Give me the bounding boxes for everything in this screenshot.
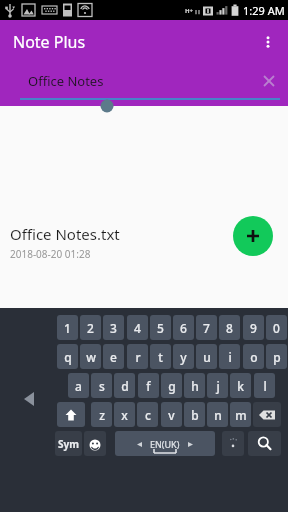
button[interactable]: Sym	[55, 431, 82, 456]
button[interactable]: Period	[222, 431, 244, 456]
button[interactable]: p	[266, 344, 287, 369]
button[interactable]: 7	[196, 315, 217, 340]
button[interactable]: n	[207, 402, 228, 427]
staticText: Note Plus	[13, 31, 86, 53]
staticText: o	[250, 349, 258, 365]
button[interactable]: 2	[80, 315, 101, 340]
staticText: r	[135, 349, 141, 365]
staticText: Sym	[58, 437, 79, 451]
staticText: y	[180, 349, 187, 365]
staticText: k	[237, 378, 244, 394]
staticText: g	[168, 378, 176, 394]
staticText: a	[75, 378, 82, 394]
staticText: f	[146, 378, 151, 394]
staticText: s	[99, 378, 105, 394]
button[interactable]: Clear search	[254, 66, 284, 96]
staticText: 7	[203, 320, 210, 336]
button[interactable]: Office Notes.txt	[0, 214, 288, 270]
staticText: 1:29 AM	[243, 3, 285, 18]
button[interactable]: Shift	[57, 402, 85, 427]
button[interactable]: Space	[115, 431, 215, 456]
staticText: Office Notes.txt	[10, 224, 120, 244]
staticText: l	[263, 378, 267, 394]
staticText: 6	[180, 320, 187, 336]
staticText: b	[191, 407, 199, 423]
staticText: x	[121, 407, 128, 423]
button[interactable]: m	[230, 402, 251, 427]
button[interactable]: i	[219, 344, 240, 369]
staticText: e	[110, 349, 117, 365]
button[interactable]: c	[137, 402, 158, 427]
button[interactable]: 1	[57, 315, 78, 340]
staticText: 1	[64, 320, 71, 336]
staticText: t	[158, 349, 163, 365]
button[interactable]: q	[57, 344, 78, 369]
button[interactable]: o	[243, 344, 264, 369]
button[interactable]: j	[207, 373, 228, 398]
button[interactable]: g	[161, 373, 182, 398]
staticText: EN(UK)	[150, 438, 180, 450]
staticText: 3	[110, 320, 117, 336]
staticText: v	[168, 407, 175, 423]
button[interactable]: s	[91, 373, 112, 398]
button[interactable]: r	[127, 344, 148, 369]
staticText: h	[191, 378, 199, 394]
staticText: 0	[273, 320, 280, 336]
button[interactable]: 8	[219, 315, 240, 340]
button[interactable]: 9	[243, 315, 264, 340]
staticText: i	[228, 349, 232, 365]
button[interactable]: Search	[248, 431, 281, 456]
button[interactable]: f	[138, 373, 159, 398]
staticText: 2	[87, 320, 94, 336]
button[interactable]: y	[173, 344, 194, 369]
button[interactable]: w	[80, 344, 101, 369]
staticText: c	[145, 407, 151, 423]
staticText: m	[235, 407, 247, 423]
button[interactable]: k	[230, 373, 251, 398]
staticText: Office Notes	[28, 72, 104, 90]
staticText: d	[121, 378, 129, 394]
button[interactable]: Backspace	[253, 402, 281, 427]
staticText: 8	[226, 320, 233, 336]
button[interactable]: b	[184, 402, 205, 427]
button[interactable]: a	[68, 373, 89, 398]
button[interactable]: More options	[248, 22, 288, 62]
staticText: p	[273, 349, 281, 365]
staticText: 2018-08-20 01:28	[10, 247, 91, 261]
staticText: n	[214, 407, 222, 423]
staticText: 5	[157, 320, 164, 336]
staticText: z	[99, 407, 105, 423]
button[interactable]: v	[161, 402, 182, 427]
button[interactable]: Add note	[233, 216, 273, 256]
button[interactable]: Hide keyboard	[16, 386, 42, 412]
staticText: q	[64, 349, 72, 365]
staticText: 4	[134, 320, 141, 336]
button[interactable]: t	[150, 344, 171, 369]
button[interactable]: z	[91, 402, 112, 427]
button[interactable]: Emoji	[84, 431, 106, 456]
button[interactable]: 6	[173, 315, 194, 340]
button[interactable]: x	[114, 402, 135, 427]
staticText: H+	[185, 7, 194, 15]
button[interactable]: 5	[150, 315, 171, 340]
button[interactable]: d	[114, 373, 135, 398]
button[interactable]: e	[103, 344, 124, 369]
button[interactable]: 4	[127, 315, 148, 340]
staticText: w	[86, 349, 96, 365]
staticText: j	[216, 378, 220, 394]
button[interactable]: u	[196, 344, 217, 369]
button[interactable]: h	[184, 373, 205, 398]
button[interactable]: 3	[103, 315, 124, 340]
staticText: 9	[250, 320, 257, 336]
button[interactable]: l	[254, 373, 275, 398]
staticText: u	[203, 349, 211, 365]
button[interactable]: 0	[266, 315, 287, 340]
